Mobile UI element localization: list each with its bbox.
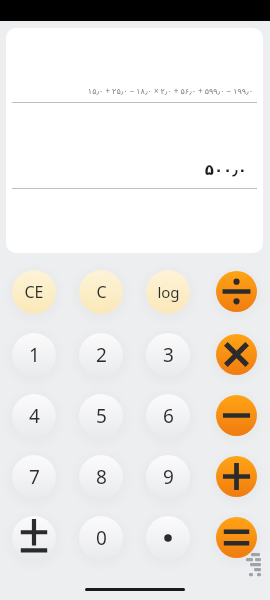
button[interactable]: 3 [146,333,190,377]
button[interactable]: 1 [12,333,56,377]
button[interactable]: C [79,270,123,314]
button[interactable]: 6 [146,394,190,438]
staticText: C [96,281,107,303]
button[interactable]: Decimal point [146,516,190,560]
staticText: ۵۰۰٫۰ [204,161,247,178]
staticText: ۱۵٫۰ + ۲۵٫۰ − ۱۸٫۰ × ۲٫۰ + ۵۶٫۰ + ۵۹۹٫۰ … [87,85,253,96]
button[interactable]: 0 [79,516,123,560]
button[interactable]: 4 [12,394,56,438]
button[interactable]: CE [12,270,56,314]
button[interactable]: 7 [12,455,56,499]
staticText: 5 [96,403,107,429]
button[interactable]: Subtract [216,395,257,436]
button[interactable]: Multiply [216,334,257,375]
staticText: 3 [163,342,174,368]
staticText: CE [24,281,44,303]
staticText: log [157,282,180,302]
button[interactable]: log [146,270,190,314]
button[interactable]: Add [216,456,257,497]
staticText: 4 [29,403,40,429]
button[interactable]: Divide [216,271,257,312]
staticText: 8 [96,464,107,490]
staticText: 1 [29,342,40,368]
button[interactable]: Plus minus [12,516,56,560]
staticText: 2 [96,342,107,368]
button[interactable]: 2 [79,333,123,377]
staticText: 0 [96,525,107,551]
button[interactable]: Equals [216,517,257,558]
button[interactable]: 5 [79,394,123,438]
button[interactable]: 8 [79,455,123,499]
staticText: 6 [163,403,174,429]
staticText: 9 [163,464,174,490]
button[interactable]: 9 [146,455,190,499]
staticText: 7 [29,464,40,490]
